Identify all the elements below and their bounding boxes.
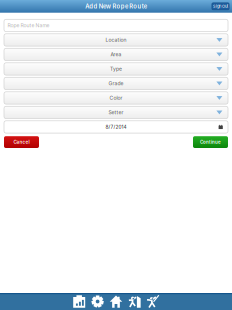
- button[interactable]: Setter: [4, 106, 228, 119]
- staticText: Setter: [108, 109, 123, 115]
- staticText: Type: [110, 66, 122, 72]
- staticText: Rope Route Name: [7, 22, 49, 28]
- button[interactable]: Continue: [193, 136, 228, 148]
- button[interactable]: Type: [4, 63, 228, 75]
- staticText: 8/7/2014: [105, 124, 126, 130]
- button[interactable]: Reports: [73, 295, 85, 308]
- staticText: Location: [105, 37, 126, 43]
- button[interactable]: Color: [4, 92, 228, 104]
- button[interactable]: Home: [110, 295, 122, 308]
- button[interactable]: Settings: [91, 295, 104, 308]
- staticText: Cancel: [13, 139, 29, 145]
- button[interactable]: Grade: [4, 77, 228, 90]
- button[interactable]: Cancel: [4, 136, 39, 148]
- staticText: Color: [109, 95, 122, 101]
- button[interactable]: Sign Out: [212, 3, 229, 10]
- staticText: Area: [110, 51, 121, 57]
- button[interactable]: Location: [4, 34, 228, 46]
- button[interactable]: Rope Routes: [128, 295, 141, 308]
- staticText: Sign Out: [213, 4, 228, 9]
- staticText: Continue: [200, 139, 221, 145]
- button[interactable]: 8/7/2014: [4, 121, 228, 133]
- button[interactable]: Area: [4, 48, 228, 61]
- staticText: Grade: [108, 80, 123, 86]
- button[interactable]: Boulders: [147, 295, 159, 308]
- staticText: Add New Rope Route: [85, 3, 147, 10]
